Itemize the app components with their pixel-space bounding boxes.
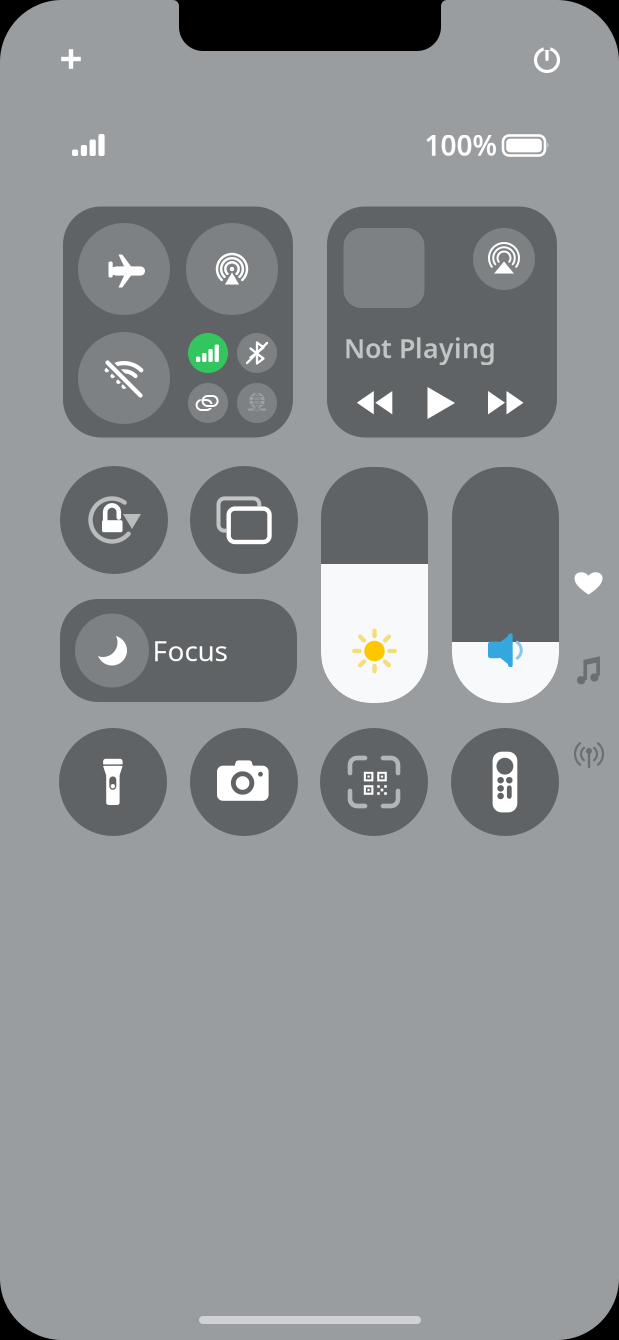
staticText: 100%	[424, 126, 497, 164]
button[interactable]: Play	[416, 376, 466, 429]
staticText: Not Playing	[344, 330, 496, 366]
button[interactable]: Wi-Fi	[78, 332, 170, 424]
button[interactable]: Cellular Data	[188, 333, 228, 373]
button[interactable]: Apple TV Remote	[451, 728, 559, 836]
button[interactable]: Screen Mirroring	[190, 466, 298, 574]
button[interactable]: Camera	[190, 728, 298, 836]
button[interactable]: Airplane Mode	[78, 223, 170, 315]
button[interactable]: VPN	[237, 383, 277, 423]
button[interactable]: Focus	[60, 599, 297, 702]
button[interactable]: Fast Forward	[477, 380, 534, 425]
button[interactable]: Rewind	[346, 380, 403, 425]
button[interactable]: AirDrop	[186, 223, 278, 315]
button[interactable]: Add control	[49, 37, 93, 81]
button[interactable]: AirPlay	[473, 228, 535, 290]
button[interactable]: Volume	[452, 467, 559, 703]
button[interactable]: Power	[525, 38, 569, 82]
button[interactable]: Bluetooth	[237, 333, 277, 373]
button[interactable]: Personal Hotspot	[188, 383, 228, 423]
button[interactable]: Brightness	[321, 467, 428, 703]
button[interactable]: Flashlight	[59, 728, 167, 836]
button[interactable]: Code Scanner	[320, 728, 428, 836]
button[interactable]: Rotation Lock	[60, 466, 168, 574]
staticText: Focus	[152, 632, 227, 669]
